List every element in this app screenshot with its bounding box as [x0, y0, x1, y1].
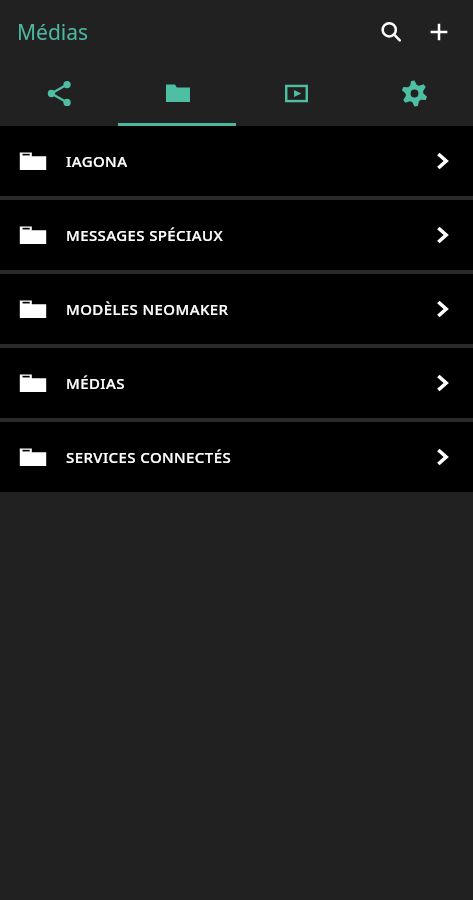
button[interactable]: Videos — [237, 64, 355, 126]
button[interactable]: Share — [0, 64, 119, 126]
button[interactable]: MÉDIAS — [0, 348, 473, 418]
button[interactable]: MESSAGES SPÉCIAUX — [0, 200, 473, 270]
button[interactable]: SERVICES CONNECTÉS — [0, 422, 473, 492]
button[interactable]: IAGONA — [0, 126, 473, 196]
staticText: Médias — [17, 18, 89, 47]
staticText: MESSAGES SPÉCIAUX — [66, 225, 429, 245]
staticText: MÉDIAS — [66, 373, 429, 393]
button[interactable]: MODÈLES NEOMAKER — [0, 274, 473, 344]
button[interactable]: Search — [367, 8, 415, 56]
staticText: MODÈLES NEOMAKER — [66, 299, 429, 319]
button[interactable]: Add — [415, 8, 463, 56]
button[interactable]: Settings — [355, 64, 473, 126]
staticText: IAGONA — [66, 151, 429, 171]
staticText: SERVICES CONNECTÉS — [66, 447, 429, 467]
button[interactable]: Folders — [119, 64, 237, 126]
